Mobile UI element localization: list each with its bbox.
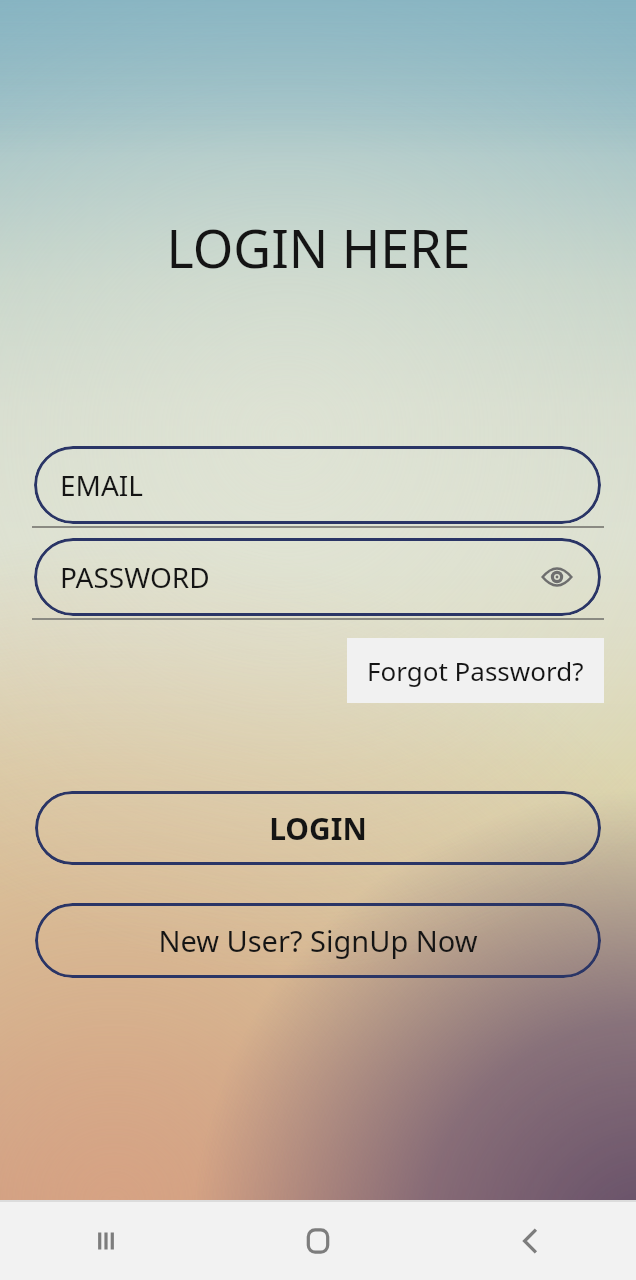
button[interactable]: LOGIN bbox=[35, 791, 601, 865]
button[interactable]: Back bbox=[424, 1202, 636, 1280]
staticText: New User? SignUp Now bbox=[158, 921, 478, 960]
button[interactable]: PASSWORD bbox=[34, 538, 601, 616]
staticText: LOGIN bbox=[269, 808, 367, 849]
staticText: Forgot Password? bbox=[367, 653, 584, 688]
button[interactable]: Forgot Password? bbox=[347, 638, 604, 703]
staticText: EMAIL bbox=[60, 466, 144, 504]
button[interactable]: Show password bbox=[535, 555, 579, 599]
button[interactable]: EMAIL bbox=[34, 446, 601, 524]
button[interactable]: New User? SignUp Now bbox=[35, 903, 601, 978]
staticText: PASSWORD bbox=[60, 558, 210, 596]
button[interactable]: Recent apps bbox=[0, 1202, 212, 1280]
staticText: LOGIN HERE bbox=[166, 212, 471, 283]
button[interactable]: Home bbox=[212, 1202, 424, 1280]
